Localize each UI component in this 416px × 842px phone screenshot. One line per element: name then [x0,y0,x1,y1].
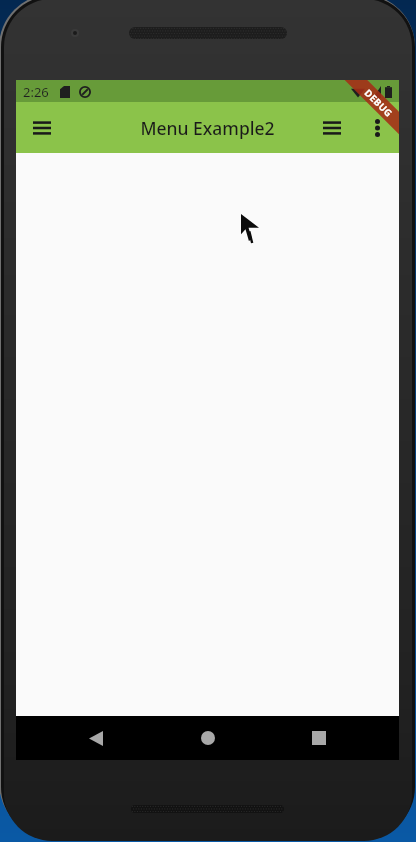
staticText: Menu Example2 [140,116,275,140]
button[interactable]: Open navigation drawer [22,108,62,148]
staticText: 2:26 [23,83,49,101]
button[interactable]: Home [186,716,230,760]
staticText: DEBUG [362,86,396,120]
button[interactable]: Menu [312,108,352,148]
button[interactable]: Back [74,716,118,760]
button[interactable]: Recents [297,716,341,760]
button[interactable]: More options [359,110,395,146]
